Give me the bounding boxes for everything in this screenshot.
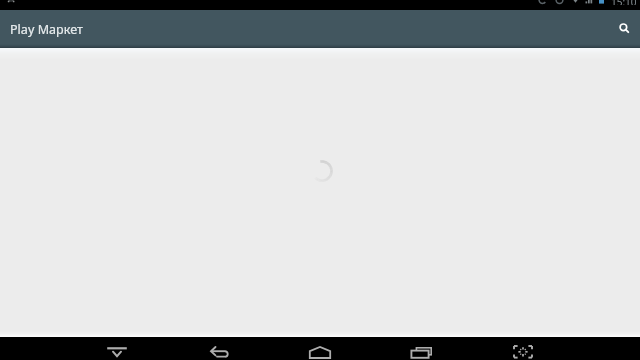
button[interactable]: Search — [602, 10, 640, 48]
staticText: 15:10 — [611, 0, 637, 5]
button[interactable]: Hide keyboard — [93, 337, 141, 360]
button[interactable]: Play Маркет — [0, 10, 602, 48]
button[interactable]: Exit full screen — [499, 337, 547, 360]
staticText: Play Маркет — [10, 21, 83, 38]
button[interactable]: Back — [196, 337, 244, 360]
button[interactable]: Recent apps — [398, 337, 446, 360]
button[interactable]: Home — [296, 337, 344, 360]
